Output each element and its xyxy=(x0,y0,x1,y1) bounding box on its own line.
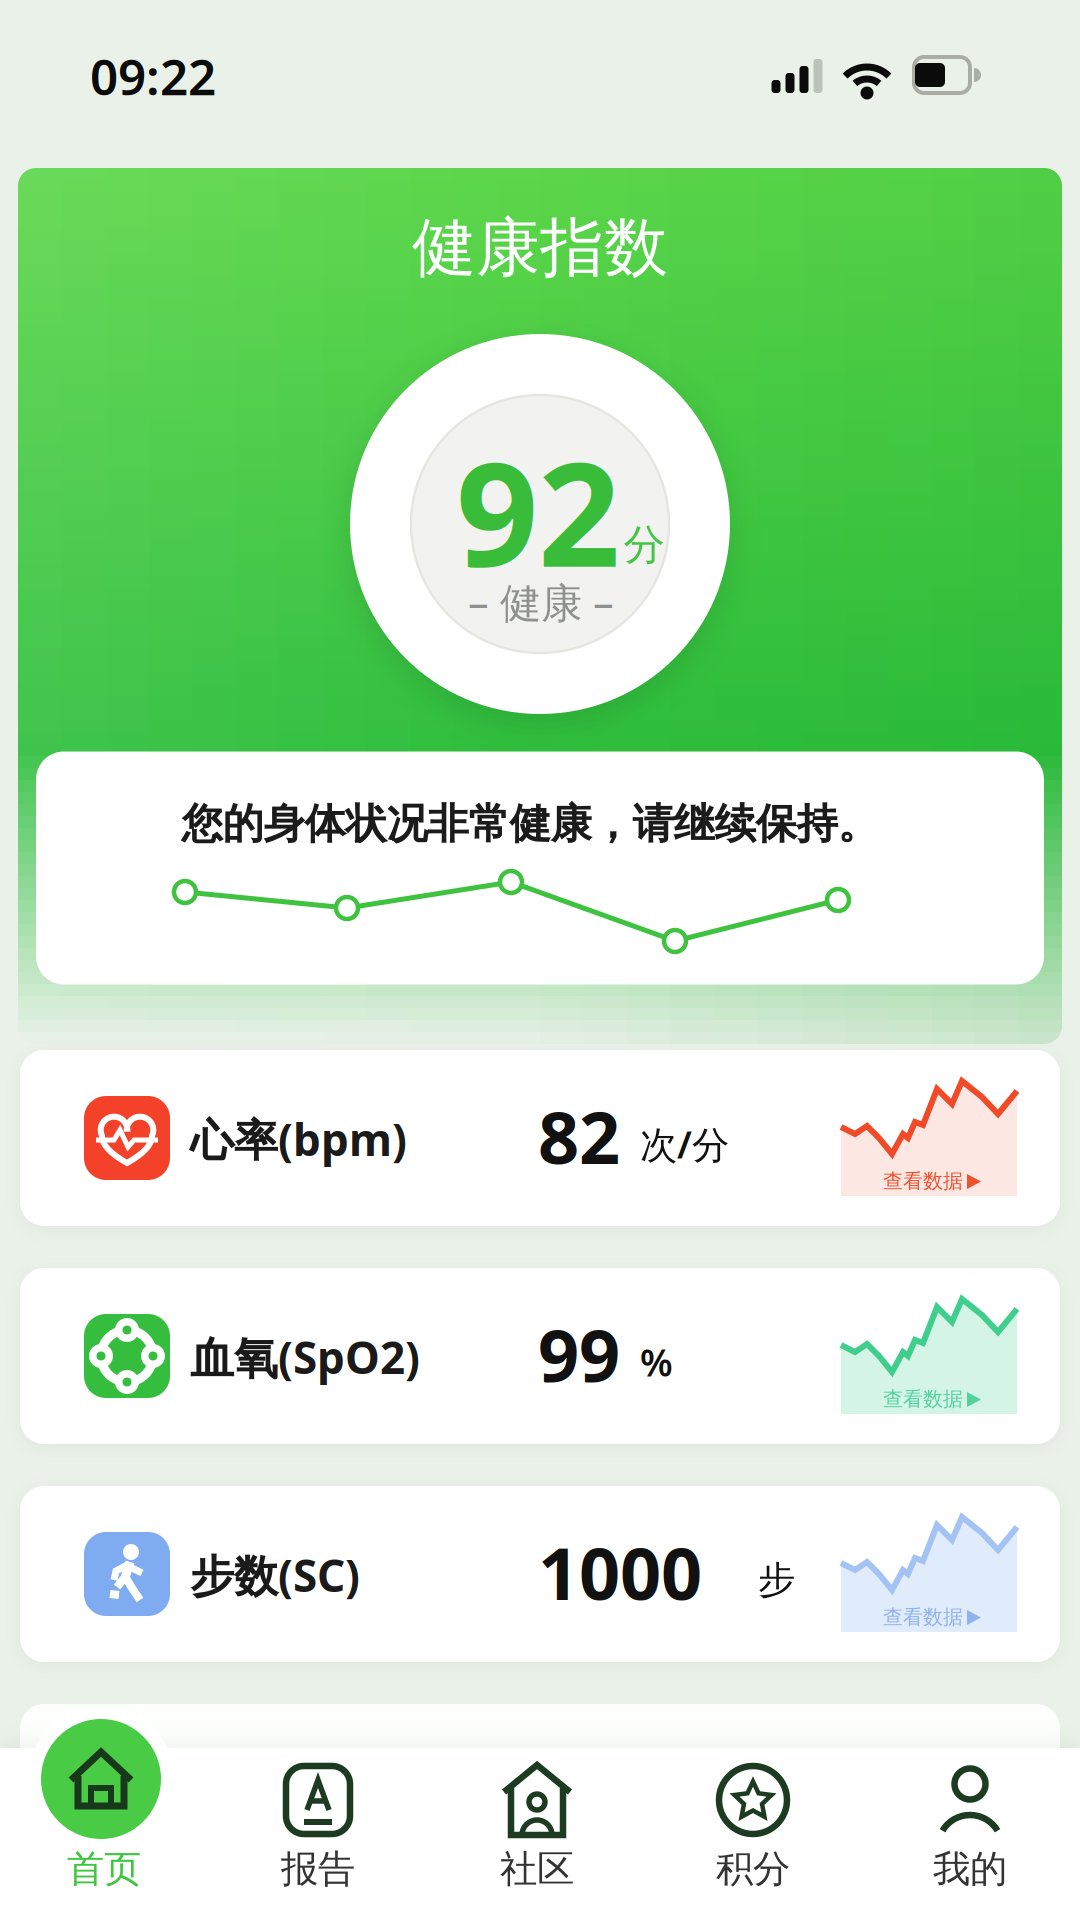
button[interactable]: 积分 xyxy=(645,1742,861,1908)
staticText: 查看数据 xyxy=(883,1605,963,1629)
button[interactable]: 首页 xyxy=(0,1706,208,1906)
staticText: 首页 xyxy=(67,1846,141,1892)
staticText: 查看数据 xyxy=(883,1387,963,1411)
staticText: 查看数据 xyxy=(883,1169,963,1193)
button[interactable]: 我的 xyxy=(862,1742,1078,1908)
staticText: 积分 xyxy=(716,1846,790,1892)
staticText: 心率(bpm) xyxy=(190,1110,407,1168)
staticText: – 健康 – xyxy=(468,575,614,629)
staticText: 您的身体状况非常健康，请继续保持。 xyxy=(181,799,878,849)
staticText: 次/分 xyxy=(640,1119,729,1169)
staticText: 血氧(SpO2) xyxy=(190,1328,420,1386)
staticText: 92 xyxy=(456,415,620,607)
staticText: 社区 xyxy=(500,1846,574,1892)
staticText: 82 xyxy=(538,1088,620,1184)
staticText: 分 xyxy=(623,520,664,570)
staticText: 报告 xyxy=(281,1846,355,1892)
button[interactable]: 社区 xyxy=(429,1742,645,1908)
staticText: % xyxy=(640,1337,673,1387)
staticText: 步 xyxy=(758,1557,795,1603)
staticText: 步数(SC) xyxy=(190,1546,360,1604)
button[interactable]: 报告 xyxy=(210,1742,426,1908)
staticText: 我的 xyxy=(933,1846,1007,1892)
button[interactable]: 心率(bpm) xyxy=(20,1050,1060,1226)
staticText: 99 xyxy=(538,1306,620,1402)
staticText: 09:22 xyxy=(90,43,216,109)
staticText: 1000 xyxy=(538,1524,702,1620)
button[interactable]: 血氧(SpO2) xyxy=(20,1268,1060,1444)
button[interactable]: 步数(SC) xyxy=(20,1486,1060,1662)
staticText: 健康指数 xyxy=(412,209,668,287)
